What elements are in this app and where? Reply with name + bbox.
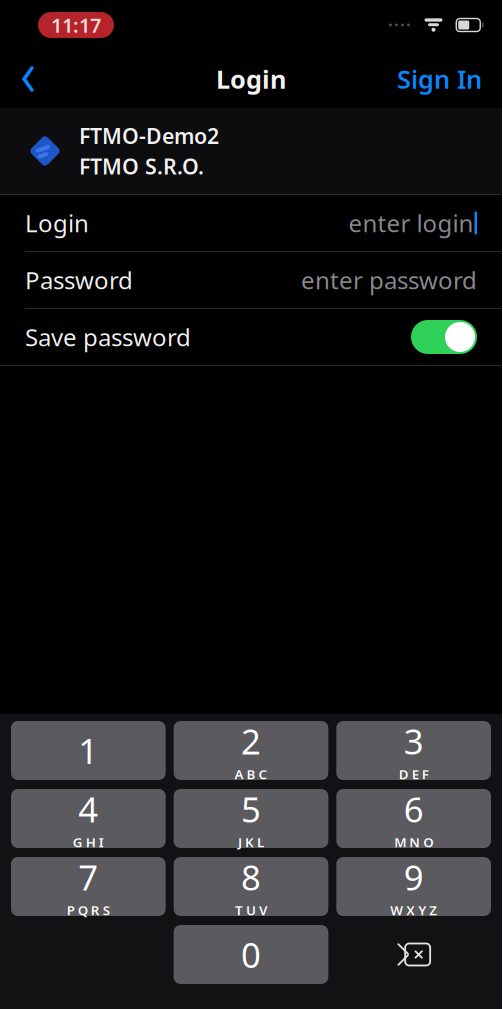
staticText: 0 <box>241 931 261 977</box>
staticText: 5 <box>241 786 261 832</box>
button[interactable]: Password <box>0 252 502 308</box>
staticText: T U V <box>235 901 267 919</box>
staticText: 7 <box>78 854 98 900</box>
staticText: Save password <box>25 321 191 353</box>
button[interactable]: 0 <box>174 925 328 984</box>
button[interactable]: 8 <box>174 857 328 916</box>
button[interactable]: 1 <box>11 721 166 780</box>
staticText: 4 <box>78 786 98 832</box>
staticText: 1 <box>78 727 98 773</box>
button[interactable]: Delete <box>336 925 491 984</box>
button[interactable]: 2 <box>174 721 328 780</box>
staticText: W X Y Z <box>390 901 437 919</box>
button[interactable]: 9 <box>336 857 491 916</box>
staticText: 3 <box>404 718 424 764</box>
staticText: 11:17 <box>51 12 101 38</box>
button[interactable]: 7 <box>11 857 166 916</box>
staticText: A B C <box>234 765 267 783</box>
staticText: M N O <box>394 833 433 851</box>
button[interactable]: 3 <box>336 721 491 780</box>
staticText: Sign In <box>397 62 482 96</box>
staticText: 8 <box>241 854 261 900</box>
staticText: 2 <box>241 718 261 764</box>
button[interactable]: 5 <box>174 789 328 848</box>
button[interactable]: 4 <box>11 789 166 848</box>
staticText: Login <box>216 62 286 96</box>
staticText: Password <box>25 264 133 296</box>
button[interactable]: Login <box>0 195 502 251</box>
staticText: 9 <box>404 854 424 900</box>
staticText: FTMO S.R.O. <box>79 152 204 180</box>
button[interactable]: Back <box>6 57 50 101</box>
staticText: D E F <box>399 765 429 783</box>
staticText: P Q R S <box>67 901 110 919</box>
staticText: 6 <box>404 786 424 832</box>
staticText: Login <box>25 207 89 239</box>
button[interactable]: 6 <box>336 789 491 848</box>
button[interactable]: Save password <box>0 309 502 365</box>
staticText: G H I <box>73 833 104 851</box>
staticText: enter login <box>348 207 473 239</box>
staticText: J K L <box>238 833 264 851</box>
button[interactable]: Sign In <box>383 54 496 104</box>
staticText: FTMO-Demo2 <box>79 122 219 150</box>
staticText: enter password <box>301 264 477 296</box>
